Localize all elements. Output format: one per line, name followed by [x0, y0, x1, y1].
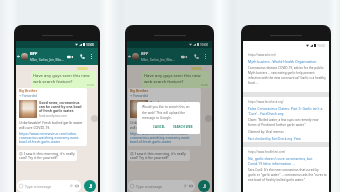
staticText: food.wordpress.com: [150, 114, 178, 118]
button[interactable]: Big Brother: [19, 89, 85, 145]
staticText: Have any guys seen this new web search f…: [33, 73, 94, 84]
staticText: https://www.who.int/: [248, 53, 276, 57]
button[interactable]: 😊 I saw it this morning, it's really coo…: [19, 151, 75, 160]
staticText: 10:00: [87, 84, 94, 86]
button[interactable]: SEARCH WEB: [172, 124, 194, 130]
button[interactable]: Voice message: [84, 180, 96, 192]
staticText: False Coronavirus Claims: Part 3: Garlic…: [248, 106, 327, 116]
staticText: Unbelievable! Fresh boiled garlic water …: [19, 120, 85, 130]
button[interactable]: Type a message: [19, 180, 79, 192]
button[interactable]: More options: [202, 53, 209, 60]
button[interactable]: Video call: [179, 52, 188, 61]
button[interactable]: Scroll to bottom: [91, 115, 98, 122]
staticText: https://www.coronavirus.com/video-corona…: [130, 131, 199, 144]
staticText: https://www.coronavirus.com/video-corona…: [19, 131, 85, 144]
staticText: Good news, coronavirus can be cured by o…: [150, 100, 199, 113]
button[interactable]: [132, 53, 139, 60]
staticText: Claim: "Boiled water, a few cups can rem…: [248, 118, 327, 127]
staticText: 10:00: [200, 43, 209, 47]
button[interactable]: Back: [16, 54, 21, 59]
staticText: Sars-Cov2: It's the new coronavirus that…: [248, 168, 327, 182]
staticText: No, garlic doesn't cure coronavirus, but…: [248, 156, 327, 166]
button[interactable]: More options: [88, 53, 95, 60]
staticText: 10:02: [317, 44, 326, 48]
staticText: 😊 I saw it this morning, it's really coo…: [19, 151, 75, 160]
staticText: SEARCH WEB: [173, 125, 193, 129]
button[interactable]: 😊 I saw it this morning, it's really coo…: [130, 151, 188, 160]
button[interactable]: Have any guys seen this new web search f…: [144, 73, 208, 86]
button[interactable]: Call: [78, 52, 87, 61]
button[interactable]: Have any guys seen this new web search f…: [33, 73, 94, 86]
staticText: 10:00: [201, 84, 208, 86]
staticText: Big Brother: [19, 89, 38, 93]
button[interactable]: https://www.healthline.com/: [243, 147, 329, 192]
button[interactable]: https://www.who.int/: [243, 50, 329, 92]
staticText: BFF: [30, 51, 38, 57]
staticText: Big Brother: [130, 89, 149, 93]
staticText: 😊 I saw it this morning, it's really coo…: [130, 151, 188, 160]
button[interactable]: Big Brother: [130, 89, 199, 145]
staticText: Mike, Carlos, Jen, Rita...: [141, 58, 175, 62]
button[interactable]: Back: [127, 54, 132, 59]
staticText: Type a message: [25, 184, 52, 189]
staticText: Have any guys seen this new web search f…: [144, 73, 208, 84]
staticText: Would you like to search this on the web…: [142, 105, 194, 120]
staticText: ↷ Forwarded: [19, 94, 37, 98]
staticText: CANCEL: [153, 125, 166, 129]
staticText: food.wordpress.com: [39, 114, 67, 118]
button[interactable]: [21, 53, 28, 60]
staticText: 10:00: [86, 43, 95, 47]
staticText: Unbelievable! Fresh boiled garlic water …: [130, 120, 199, 130]
staticText: Claimed by: Viral memes: [248, 130, 284, 134]
staticText: https://www.factcheck.org/: [248, 100, 284, 104]
staticText: https://www.healthline.com/: [248, 150, 286, 154]
button[interactable]: CANCEL: [152, 124, 167, 130]
staticText: Fact checked by FactCheck.org View: [248, 137, 301, 141]
button[interactable]: Type a message: [130, 180, 193, 192]
button[interactable]: Voice message: [198, 180, 210, 192]
staticText: Mike, Carlos, Jen, Rita...: [30, 58, 64, 62]
button[interactable]: Scroll to bottom: [205, 115, 212, 122]
staticText: Type a message: [136, 184, 163, 189]
staticText: Myth busters - World Health Organization: [248, 59, 317, 64]
button[interactable]: Call: [192, 52, 201, 61]
staticText: Good news, coronavirus can be cured by o…: [39, 100, 85, 113]
staticText: BFF: [141, 51, 149, 57]
staticText: ↷ Forwarded: [130, 94, 148, 98]
staticText: Coronavirus disease COVID-19, advice for…: [248, 66, 327, 85]
button[interactable]: Video call: [65, 52, 74, 61]
button[interactable]: https://www.factcheck.org/: [243, 97, 329, 142]
